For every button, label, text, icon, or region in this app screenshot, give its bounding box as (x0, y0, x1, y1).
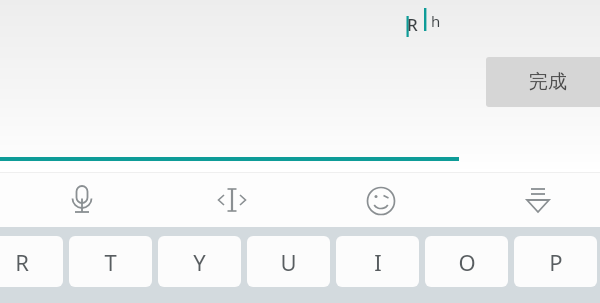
button[interactable]: 完成 (486, 57, 600, 107)
staticText: U (280, 247, 297, 277)
button[interactable]: Emoji (359, 179, 403, 223)
staticText: 完成 (529, 70, 567, 94)
staticText: h (431, 11, 441, 31)
button[interactable]: P (514, 236, 597, 287)
staticText: Y (193, 247, 206, 277)
button[interactable]: O (425, 236, 508, 287)
staticText: R (15, 247, 29, 277)
staticText: T (104, 247, 117, 277)
staticText: O (458, 247, 476, 277)
staticText: R (407, 13, 418, 36)
button[interactable]: Hide keyboard (516, 177, 560, 221)
button[interactable]: T (69, 236, 152, 287)
staticText: I (374, 247, 382, 277)
button[interactable]: Voice input (60, 178, 104, 222)
button[interactable]: I (336, 236, 419, 287)
button[interactable]: Y (158, 236, 241, 287)
staticText: P (549, 247, 563, 277)
button[interactable]: R (0, 236, 63, 287)
button[interactable]: U (247, 236, 330, 287)
button[interactable]: Move cursor (210, 178, 254, 222)
